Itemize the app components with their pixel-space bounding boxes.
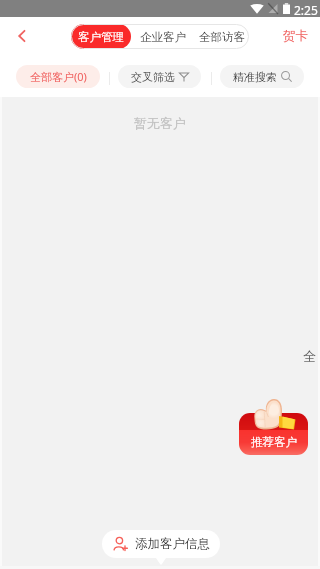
- button[interactable]: 添加客户信息: [102, 530, 220, 558]
- staticText: 企业客户: [140, 30, 186, 44]
- staticText: 暂无客户: [134, 115, 186, 131]
- staticText: 客户管理: [78, 30, 124, 44]
- button[interactable]: 全部访客: [195, 24, 249, 49]
- staticText: 添加客户信息: [135, 536, 210, 552]
- button[interactable]: 贺卡: [279, 24, 312, 48]
- staticText: 全: [303, 348, 316, 364]
- staticText: 交叉筛选: [131, 70, 175, 84]
- staticText: 全部客户(0): [30, 69, 87, 84]
- staticText: 贺卡: [283, 28, 308, 44]
- button[interactable]: 客户管理: [71, 24, 131, 49]
- staticText: 全部访客: [199, 30, 245, 44]
- staticText: 2:25: [294, 2, 318, 18]
- button[interactable]: 精准搜索: [220, 65, 304, 88]
- button[interactable]: Back: [8, 22, 36, 50]
- staticText: 精准搜索: [233, 70, 277, 84]
- button[interactable]: 全部客户(0): [16, 65, 100, 88]
- button[interactable]: 企业客户: [131, 24, 195, 49]
- button[interactable]: 全: [303, 348, 316, 364]
- button[interactable]: 推荐客户: [239, 413, 308, 455]
- staticText: 推荐客户: [251, 435, 297, 449]
- button[interactable]: 交叉筛选: [118, 65, 201, 88]
